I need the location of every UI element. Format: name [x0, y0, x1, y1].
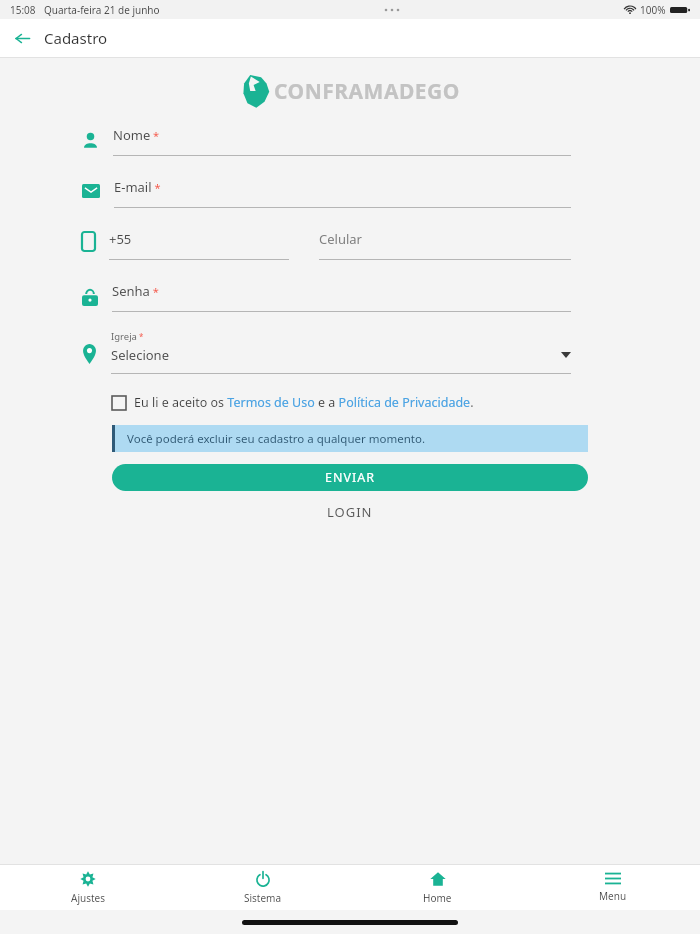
staticText: Quarta-feira 21 de junho [44, 3, 160, 17]
staticText: LOGIN [327, 503, 373, 521]
button[interactable]: Igreja * [112, 330, 587, 374]
button[interactable]: E-mail * [112, 178, 587, 208]
staticText: Igreja * [111, 330, 144, 343]
button[interactable]: Eu li e aceito os Termos de Uso e a Polí… [112, 394, 587, 411]
staticText: CONFRAMADEGO [274, 77, 460, 106]
button[interactable]: Sistema [175, 865, 350, 910]
button[interactable]: Back [6, 22, 38, 54]
staticText: Você poderá excluir seu cadastro a qualq… [127, 431, 425, 447]
button[interactable]: Nome * [112, 126, 587, 156]
staticText: ENVIAR [325, 469, 375, 486]
button[interactable]: Celular [319, 230, 571, 260]
staticText: 15:08 [10, 3, 36, 17]
staticText: 100% [640, 3, 666, 17]
button[interactable]: LOGIN [0, 503, 700, 521]
button[interactable]: Senha * [112, 282, 587, 312]
staticText: Selecione [111, 346, 169, 364]
staticText: E-mail * [114, 178, 161, 196]
staticText: Nome * [113, 126, 160, 144]
staticText: Ajustes [71, 891, 105, 905]
staticText: Eu li e aceito os Termos de Uso e a Polí… [134, 394, 474, 411]
button[interactable]: Menu [525, 865, 700, 910]
button[interactable]: +55 [109, 230, 289, 260]
staticText: Menu [599, 889, 627, 903]
staticText: Home [423, 891, 452, 905]
button[interactable]: ENVIAR [112, 464, 588, 491]
button[interactable]: Ajustes [0, 865, 175, 910]
staticText: +55 [109, 230, 132, 248]
staticText: Celular [319, 230, 362, 248]
staticText: Cadastro [44, 28, 108, 48]
staticText: Sistema [244, 891, 282, 905]
button[interactable]: Home [350, 865, 525, 910]
staticText: Senha * [112, 282, 159, 300]
